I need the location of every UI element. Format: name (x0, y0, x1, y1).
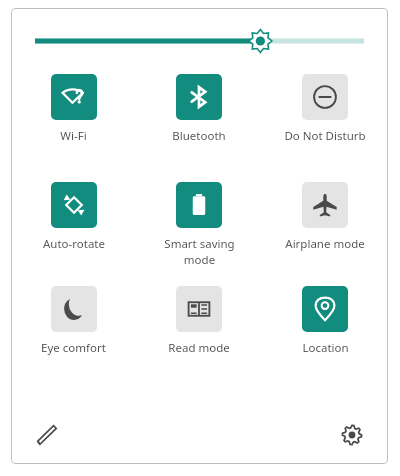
staticText: Read mode (168, 340, 230, 356)
button[interactable]: Smart saving mode (136, 182, 262, 270)
button[interactable]: Wi-Fi (11, 74, 136, 162)
button[interactable]: Auto-rotate (11, 182, 136, 270)
button[interactable] (11, 8, 388, 74)
staticText: Smart saving mode (164, 236, 235, 267)
button[interactable]: Location (262, 286, 388, 370)
staticText: Auto-rotate (43, 236, 105, 252)
button[interactable]: Edit (27, 415, 67, 455)
button[interactable]: Bluetooth (136, 74, 262, 162)
button[interactable]: Airplane mode (262, 182, 388, 270)
staticText: Location (302, 340, 349, 356)
staticText: Eye comfort (41, 340, 106, 356)
button[interactable]: Eye comfort (11, 286, 136, 370)
staticText: Do Not Disturb (284, 128, 366, 144)
button[interactable]: Do Not Disturb (262, 74, 388, 162)
staticText: Wi-Fi (60, 128, 87, 144)
staticText: Airplane mode (285, 236, 365, 252)
button[interactable]: Settings (332, 415, 372, 455)
staticText: Bluetooth (172, 128, 226, 144)
button[interactable]: Read mode (136, 286, 262, 370)
